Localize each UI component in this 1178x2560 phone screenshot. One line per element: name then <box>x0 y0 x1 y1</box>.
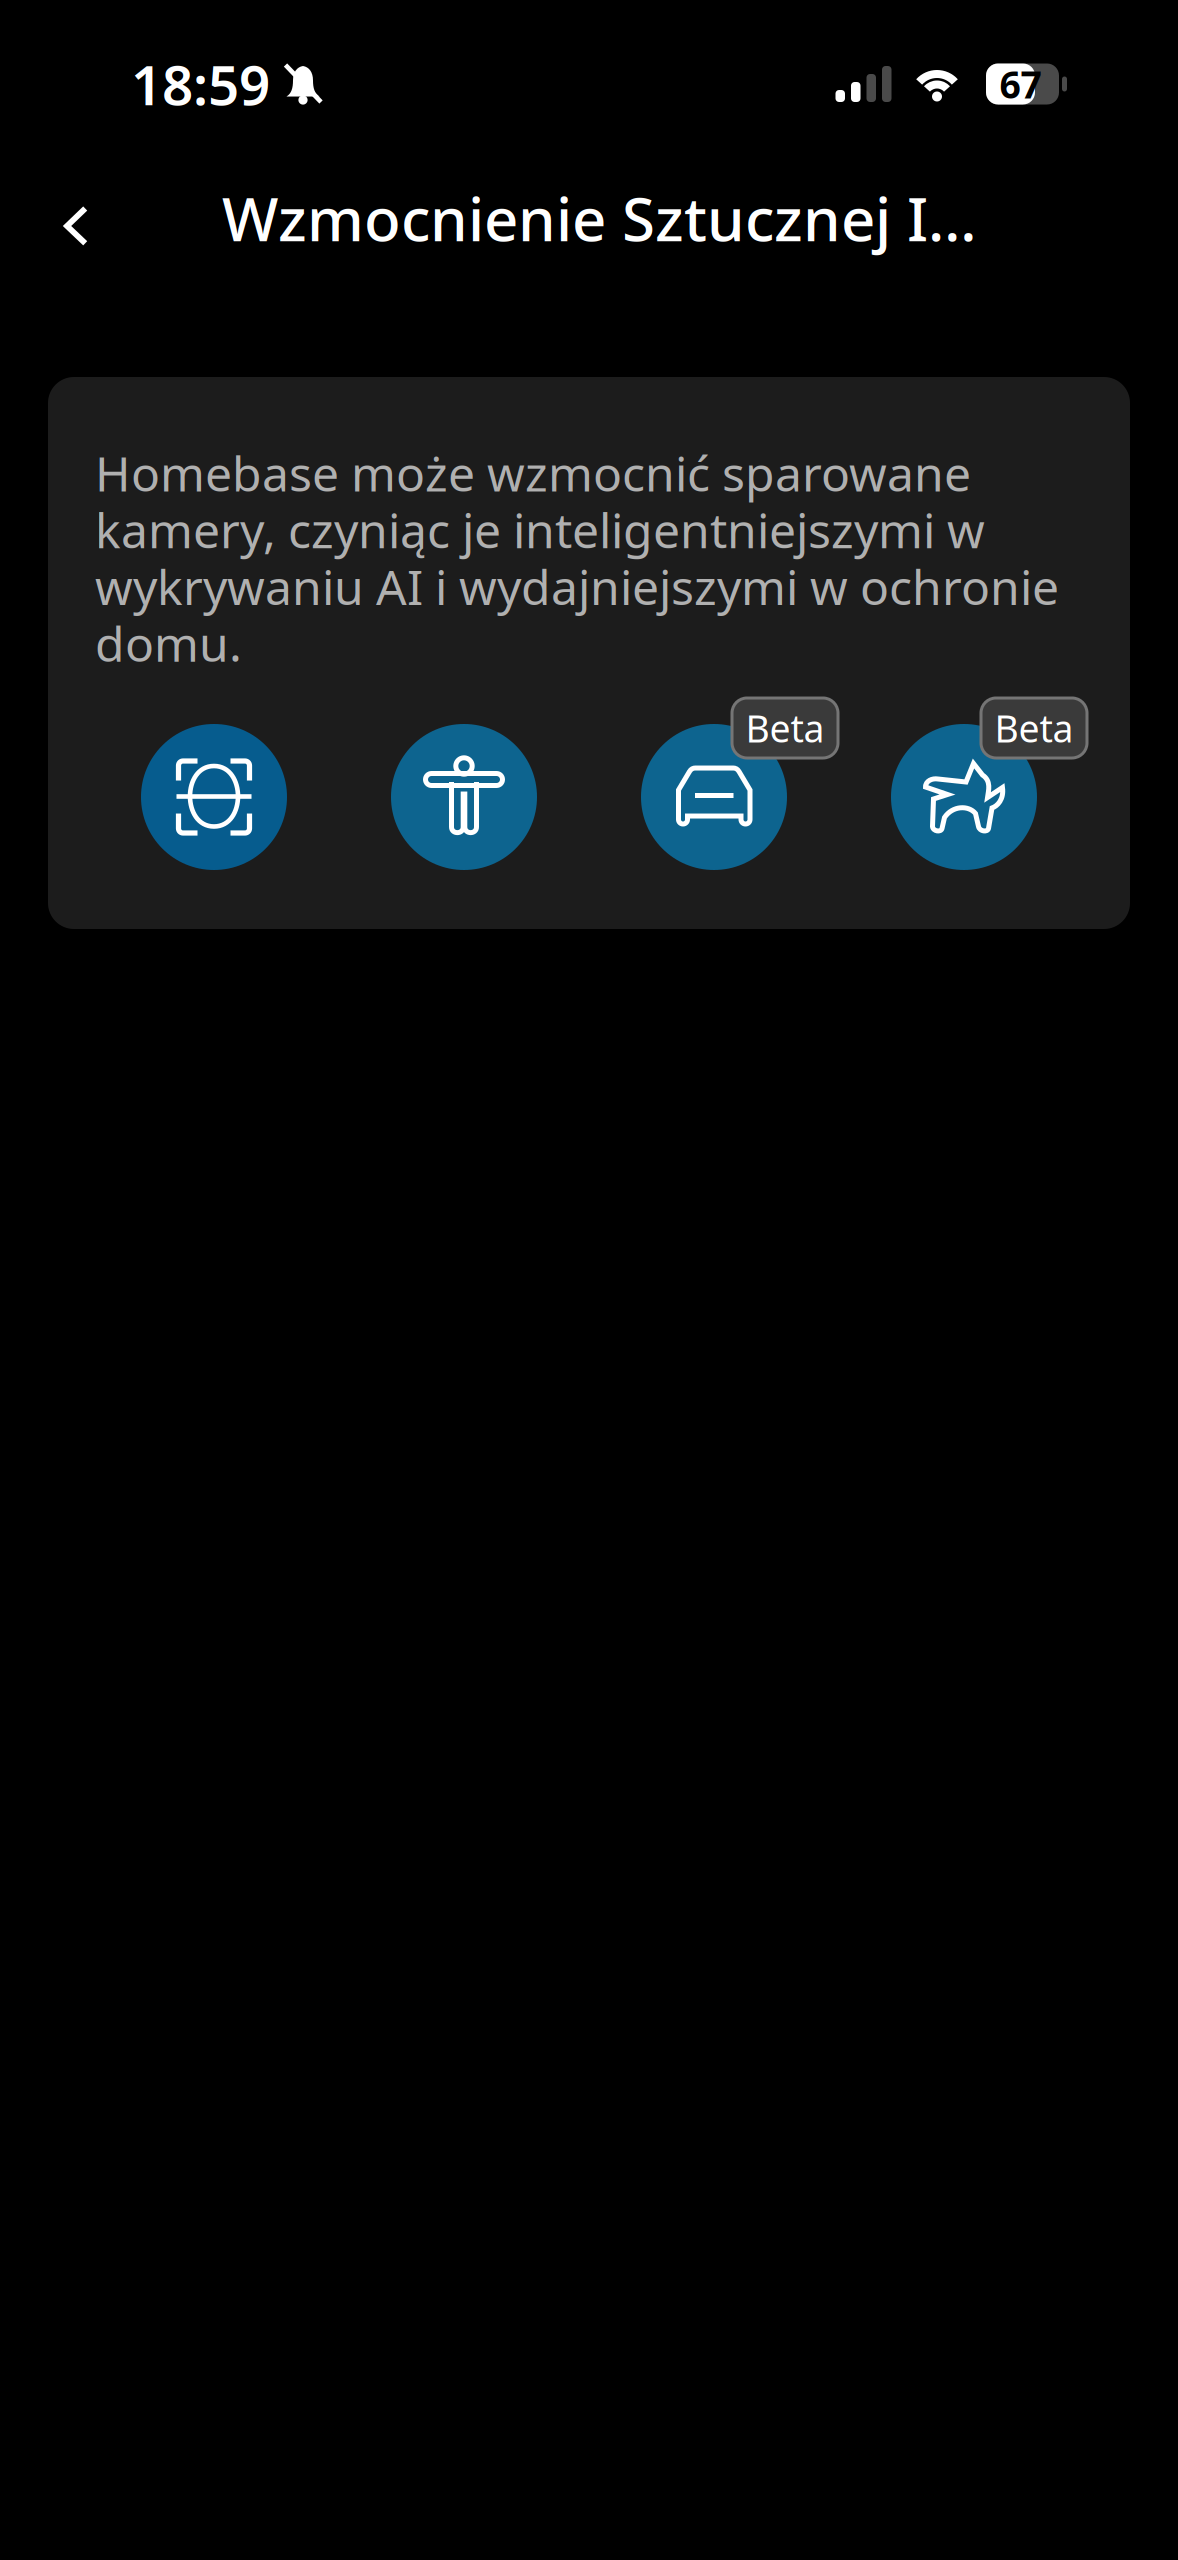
staticText: Homebase może wzmocnić sparowane kamery,… <box>95 441 1059 675</box>
button[interactable] <box>141 724 287 870</box>
button[interactable]: Back <box>21 175 131 261</box>
button[interactable] <box>891 724 1037 870</box>
staticText: 67 <box>999 59 1041 109</box>
staticText: 18:59 <box>131 48 270 120</box>
staticText: Wzmocnienie Sztucznej I… <box>222 178 977 258</box>
button[interactable] <box>391 724 537 870</box>
staticText: Beta <box>745 703 824 753</box>
button[interactable] <box>641 724 787 870</box>
staticText: Beta <box>994 703 1073 753</box>
